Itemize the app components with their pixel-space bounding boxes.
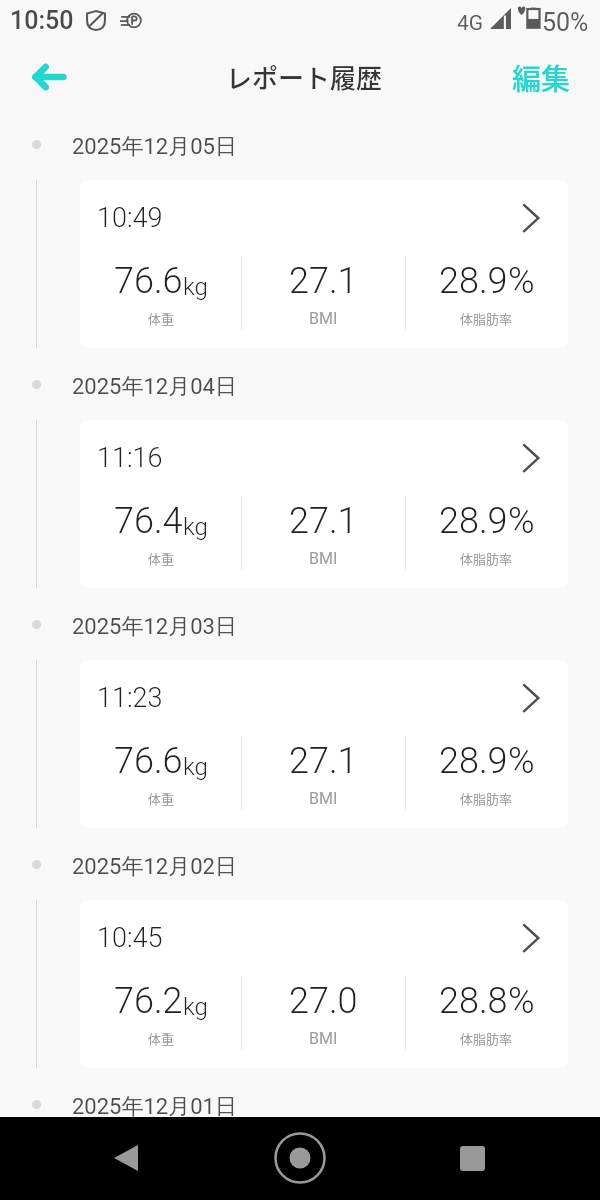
- button[interactable]: Back: [19, 47, 79, 107]
- button[interactable]: Home: [260, 1118, 340, 1198]
- button[interactable]: 編集: [512, 56, 571, 98]
- staticText: %: [508, 500, 535, 542]
- staticText: 2025年12月05日: [72, 133, 237, 161]
- staticText: BMI: [309, 1029, 338, 1048]
- staticText: kg: [183, 513, 208, 541]
- staticText: kg: [183, 273, 208, 301]
- staticText: BMI: [309, 549, 338, 568]
- staticText: 4G: [457, 11, 484, 36]
- staticText: 10:50: [10, 6, 74, 35]
- staticText: 76.4: [114, 500, 183, 542]
- staticText: 体重: [148, 1029, 175, 1048]
- staticText: kg: [183, 993, 208, 1021]
- staticText: レポート履歴: [226, 58, 383, 96]
- staticText: 28.8: [439, 980, 508, 1022]
- staticText: 28.9: [439, 260, 508, 302]
- staticText: 体重: [148, 309, 175, 328]
- staticText: 2025年12月02日: [72, 853, 237, 881]
- button[interactable]: 11:16: [80, 420, 568, 588]
- staticText: %: [508, 980, 535, 1022]
- staticText: BMI: [309, 789, 338, 808]
- staticText: kg: [183, 753, 208, 781]
- staticText: 27.1: [289, 500, 358, 542]
- staticText: BMI: [309, 309, 338, 328]
- staticText: 体重: [148, 549, 175, 568]
- staticText: 2025年12月03日: [72, 613, 237, 641]
- staticText: 2025年12月04日: [72, 373, 237, 401]
- staticText: 76.6: [114, 260, 183, 302]
- staticText: 27.1: [289, 740, 358, 782]
- button[interactable]: 10:45: [80, 900, 568, 1068]
- staticText: 28.9: [439, 740, 508, 782]
- staticText: 76.2: [114, 980, 183, 1022]
- staticText: 28.9: [439, 500, 508, 542]
- staticText: 27.1: [289, 260, 358, 302]
- button[interactable]: Recent apps: [432, 1118, 512, 1198]
- staticText: 76.6: [114, 740, 183, 782]
- staticText: 体脂肪率: [460, 789, 513, 808]
- staticText: 2025年12月01日: [72, 1093, 237, 1121]
- staticText: 10:45: [97, 922, 163, 954]
- staticText: 体脂肪率: [460, 1029, 513, 1048]
- staticText: 体脂肪率: [460, 309, 513, 328]
- staticText: 体脂肪率: [460, 549, 513, 568]
- staticText: %: [508, 260, 535, 302]
- button[interactable]: Back: [86, 1118, 166, 1198]
- staticText: 10:49: [97, 202, 163, 234]
- staticText: %: [508, 740, 535, 782]
- staticText: 11:23: [97, 682, 163, 714]
- staticText: 体重: [148, 789, 175, 808]
- staticText: 50%: [542, 8, 589, 37]
- button[interactable]: 11:23: [80, 660, 568, 828]
- staticText: 27.0: [289, 980, 358, 1022]
- button[interactable]: 10:49: [80, 180, 568, 348]
- staticText: 編集: [512, 56, 571, 98]
- staticText: 11:16: [97, 442, 163, 474]
